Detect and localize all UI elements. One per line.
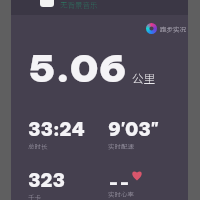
staticText: 无背景音乐	[60, 0, 98, 10]
staticText: 千卡	[28, 192, 41, 200]
button[interactable]: 跑步实况	[11, 23, 186, 34]
staticText: 跑步实况	[160, 24, 186, 33]
staticText: 5.06	[28, 45, 127, 92]
staticText: 33:24	[28, 118, 85, 141]
staticText: 总时长	[28, 141, 48, 150]
staticText: 9'03"	[108, 118, 159, 141]
button[interactable]: 33:24	[28, 118, 108, 150]
button[interactable]: --	[108, 169, 188, 196]
staticText: 323	[28, 169, 66, 192]
button[interactable]: 9'03"	[108, 118, 188, 150]
staticText: 实时配速	[108, 141, 134, 150]
staticText: 实时心率	[108, 189, 134, 198]
staticText: --	[108, 171, 130, 189]
other: Heart rate	[131, 169, 143, 181]
button[interactable]: 无背景音乐	[11, 0, 188, 15]
button[interactable]: 323	[28, 169, 108, 200]
staticText: 公里	[132, 70, 155, 87]
